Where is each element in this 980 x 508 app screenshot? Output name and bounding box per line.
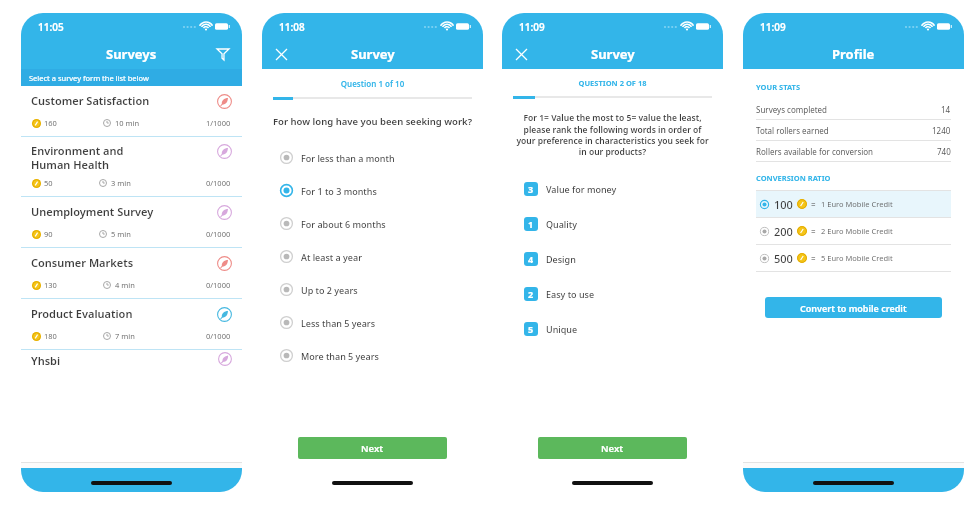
staticText: Total rollers earned [756,125,932,136]
staticText: 10 min [115,118,140,128]
staticText: 1 [528,218,534,230]
staticText: 1240 [932,125,951,136]
button[interactable]: Product Evaluation [21,299,242,350]
staticText: 11:08 [279,20,305,34]
button[interactable]: At least a year [280,240,483,273]
staticText: Surveys completed [756,104,941,115]
staticText: = [811,226,816,237]
staticText: Rollers available for conversion [756,146,937,157]
staticText: Unemployment Survey [31,204,217,219]
staticText: Less than 5 years [301,317,376,329]
staticText: 5 min [111,229,131,239]
staticText: Value for money [546,183,617,195]
staticText: 0/1000 [206,331,231,341]
button[interactable]: More than 5 years [280,339,483,372]
staticText: 11:09 [760,20,786,34]
staticText: Environment and Human Health [31,143,217,172]
staticText: 2 Euro Mobile Credit [821,226,893,236]
staticText: Quality [546,218,577,230]
button[interactable]: Environment and Human Health [21,137,242,197]
button[interactable]: Consumer Markets [21,248,242,299]
staticText: 90 [44,229,53,239]
staticText: For about 6 months [301,218,386,230]
staticText: 180 [44,331,57,341]
staticText: 130 [44,280,57,290]
staticText: For less than a month [301,152,395,164]
staticText: 4 min [115,280,135,290]
staticText: 11:09 [519,20,545,34]
staticText: 0/1000 [206,280,231,290]
button[interactable]: Surveys [21,463,94,492]
button[interactable]: More [890,463,964,492]
button[interactable]: 5 [524,311,723,346]
staticText: Survey [591,45,635,63]
button[interactable]: Surveys [743,463,816,492]
button[interactable]: Profile [816,463,890,492]
button[interactable]: 2 [524,276,723,311]
button[interactable]: Customer Satisfaction [21,86,242,137]
staticText: 50 [44,178,53,188]
button[interactable]: Next [298,437,447,459]
button[interactable]: Next [538,437,687,459]
staticText: Easy to use [546,288,595,300]
button[interactable]: 4 [524,241,723,276]
staticText: Convert to mobile credit [800,302,907,314]
button[interactable]: Profile [94,463,168,492]
staticText: 4 [528,253,534,265]
button[interactable]: Up to 2 years [280,273,483,306]
staticText: For 1 to 3 months [301,185,377,197]
staticText: 3 [528,183,534,195]
button[interactable]: Close [510,43,532,65]
staticText: Yhsbi [31,353,61,368]
staticText: 1/1000 [206,118,231,128]
button[interactable]: 500 [760,245,951,271]
staticText: Consumer Markets [31,255,217,270]
staticText: CONVERSION RATIO [756,173,831,183]
staticText: Next [361,442,384,455]
button[interactable]: Filter [212,43,234,65]
button[interactable]: For about 6 months [280,207,483,240]
staticText: 500 [774,251,793,266]
staticText: 2 [528,288,534,300]
staticText: Unique [546,323,578,335]
button[interactable]: For 1 to 3 months [280,174,483,207]
staticText: At least a year [301,251,362,263]
button[interactable]: For less than a month [280,141,483,174]
staticText: 1 Euro Mobile Credit [821,199,893,209]
staticText: More than 5 years [301,350,379,362]
staticText: YOUR STATS [756,82,801,92]
button[interactable]: 100 [760,191,951,217]
staticText: = [811,253,816,264]
staticText: 160 [44,118,57,128]
staticText: 200 [774,224,793,239]
staticText: Surveys [106,45,157,63]
staticText: 0/1000 [206,178,231,188]
staticText: QUESTION 2 OF 18 [502,78,723,88]
button[interactable]: More [168,463,242,492]
staticText: Customer Satisfaction [31,93,217,108]
button[interactable]: 3 [524,171,723,206]
staticText: 740 [937,146,951,157]
staticText: For 1= Value the most to 5= value the le… [515,112,710,158]
staticText: 11:05 [38,20,64,34]
button[interactable]: Close [270,43,292,65]
button[interactable]: 1 [524,206,723,241]
staticText: 0/1000 [206,229,231,239]
button[interactable]: Convert to mobile credit [765,297,942,318]
staticText: Up to 2 years [301,284,358,296]
staticText: = [811,199,816,210]
staticText: Design [546,253,576,265]
button[interactable]: Unemployment Survey [21,197,242,248]
staticText: 5 [528,323,534,335]
staticText: 5 Euro Mobile Credit [821,253,893,263]
staticText: Select a survey form the list below [29,73,149,83]
staticText: Next [601,442,624,455]
staticText: For how long have you been seeking work? [272,115,473,128]
staticText: 7 min [115,331,135,341]
button[interactable]: 200 [760,218,951,244]
button[interactable]: Less than 5 years [280,306,483,339]
staticText: Question 1 of 10 [262,78,483,89]
staticText: 14 [941,104,951,115]
staticText: 100 [774,197,793,212]
staticText: Survey [351,45,395,63]
